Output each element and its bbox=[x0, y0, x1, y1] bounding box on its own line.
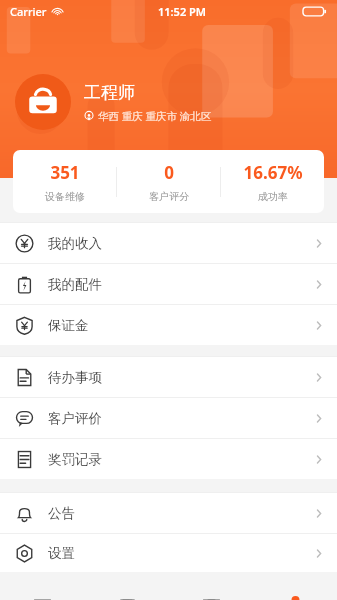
staticText: 客户评价 bbox=[48, 410, 102, 427]
staticText: 我的收入 bbox=[48, 235, 102, 252]
staticText: Carrier bbox=[10, 4, 47, 19]
staticText: 奖罚记录 bbox=[48, 451, 102, 468]
button[interactable]: 客户评价 bbox=[0, 398, 337, 438]
staticText: 16.67% bbox=[243, 161, 303, 184]
staticText: 设置 bbox=[48, 545, 75, 562]
button[interactable]: 待办事项 bbox=[0, 357, 337, 397]
button[interactable]: 工程师 bbox=[15, 74, 212, 130]
staticText: 客户评分 bbox=[149, 190, 189, 203]
button[interactable]: 保证金 bbox=[0, 305, 337, 345]
button[interactable]: 351 bbox=[13, 150, 116, 213]
button[interactable]: 0 bbox=[117, 150, 220, 213]
button[interactable]: 奖罚记录 bbox=[0, 439, 337, 479]
staticText: 待办事项 bbox=[48, 369, 102, 386]
staticText: 我的配件 bbox=[48, 276, 102, 293]
staticText: 公告 bbox=[48, 505, 75, 522]
button[interactable]: 我的收入 bbox=[0, 223, 337, 263]
button[interactable]: 我的配件 bbox=[0, 264, 337, 304]
staticText: 设备维修 bbox=[45, 190, 85, 203]
staticText: 0 bbox=[164, 161, 174, 184]
button[interactable]: 设置 bbox=[0, 534, 337, 572]
staticText: 成功率 bbox=[258, 190, 288, 203]
staticText: 保证金 bbox=[48, 317, 89, 334]
staticText: 华西 重庆 重庆市 渝北区 bbox=[98, 109, 212, 123]
staticText: 351 bbox=[50, 161, 80, 184]
staticText: 工程师 bbox=[84, 82, 135, 103]
button[interactable]: 16.67% bbox=[221, 150, 324, 213]
button[interactable]: 公告 bbox=[0, 493, 337, 533]
staticText: 11:52 PM bbox=[158, 4, 207, 19]
